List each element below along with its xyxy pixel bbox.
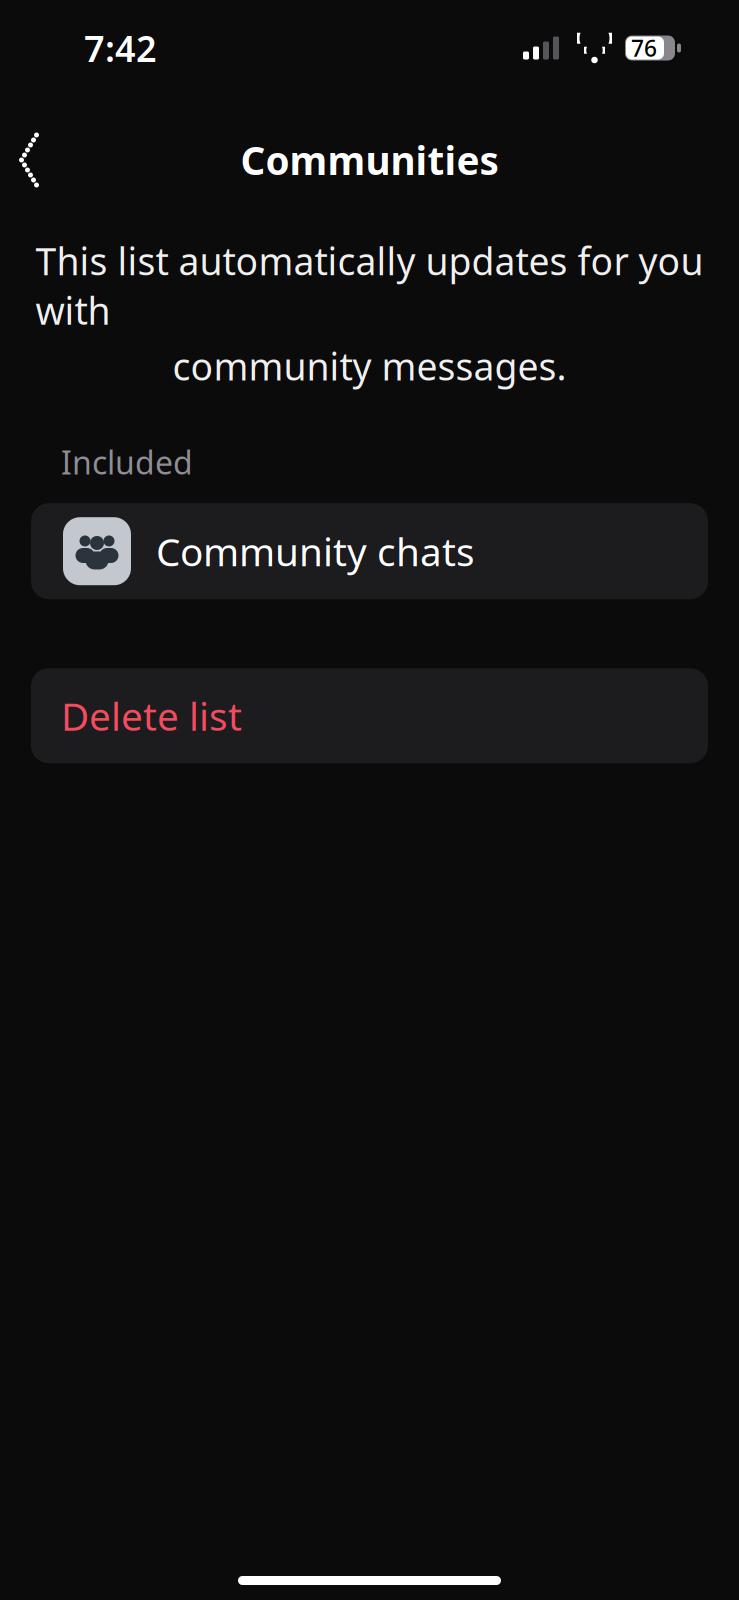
staticText: 76 bbox=[631, 33, 657, 63]
button[interactable]: Delete list bbox=[31, 668, 708, 763]
staticText: Communities bbox=[240, 134, 498, 186]
staticText: Community chats bbox=[156, 526, 475, 577]
button[interactable]: Community chats bbox=[31, 503, 708, 599]
staticText: 7:42 bbox=[84, 24, 157, 72]
staticText: community messages. bbox=[172, 341, 566, 391]
button[interactable]: Back bbox=[0, 128, 62, 192]
staticText: Included bbox=[61, 441, 193, 483]
staticText: This list automatically updates for you … bbox=[35, 236, 703, 335]
staticText: Delete list bbox=[61, 690, 242, 741]
